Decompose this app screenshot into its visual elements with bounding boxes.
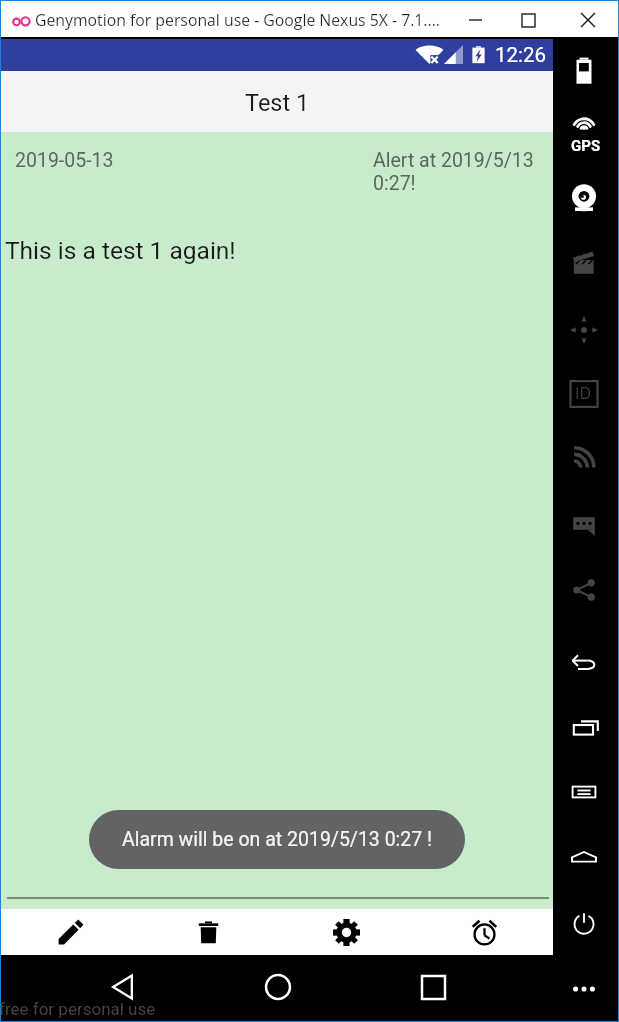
button[interactable]: Record <box>551 243 616 283</box>
button[interactable]: Edit <box>1 909 139 955</box>
staticText: 12:26 <box>495 43 547 67</box>
staticText: Alert at 2019/5/13 0:27! <box>373 149 549 195</box>
button[interactable]: Share <box>551 570 616 610</box>
button[interactable]: Maximize <box>500 1 557 39</box>
staticText: This is a test 1 again! <box>5 236 236 265</box>
button[interactable]: Battery <box>551 49 616 89</box>
button[interactable]: Camera <box>551 179 616 219</box>
button[interactable]: Back <box>551 643 616 683</box>
button[interactable]: Recents <box>551 708 616 748</box>
staticText: Test 1 <box>245 89 310 117</box>
button[interactable]: GPS <box>551 115 616 155</box>
button[interactable]: Settings <box>277 909 415 955</box>
staticText: 2019-05-13 <box>15 149 373 172</box>
staticText: ID <box>575 382 592 404</box>
button[interactable]: Alarm will be on at 2019/5/13 0:27 ! <box>89 810 465 869</box>
button[interactable]: Minimize <box>450 1 500 39</box>
staticText: GPS <box>571 137 601 155</box>
button[interactable]: Messages <box>551 505 616 545</box>
button[interactable]: Delete <box>139 909 277 955</box>
staticText: Genymotion for personal use - Google Nex… <box>35 9 440 31</box>
button[interactable]: Network <box>551 438 616 478</box>
button[interactable]: Alarm <box>415 909 553 955</box>
button[interactable]: Move <box>551 310 616 350</box>
button[interactable]: Power <box>551 903 616 943</box>
button[interactable]: Home <box>248 955 308 1021</box>
button[interactable]: Close <box>557 1 618 39</box>
button[interactable]: Identifiers <box>551 374 616 414</box>
button[interactable]: Back <box>93 955 153 1021</box>
staticText: free for personal use <box>0 999 156 1019</box>
staticText: Alarm will be on at 2019/5/13 0:27 ! <box>122 828 433 851</box>
button[interactable]: Home <box>551 838 616 878</box>
button[interactable]: Menu <box>551 772 616 812</box>
button[interactable]: Recents <box>403 955 463 1021</box>
button[interactable]: More <box>551 969 616 1009</box>
